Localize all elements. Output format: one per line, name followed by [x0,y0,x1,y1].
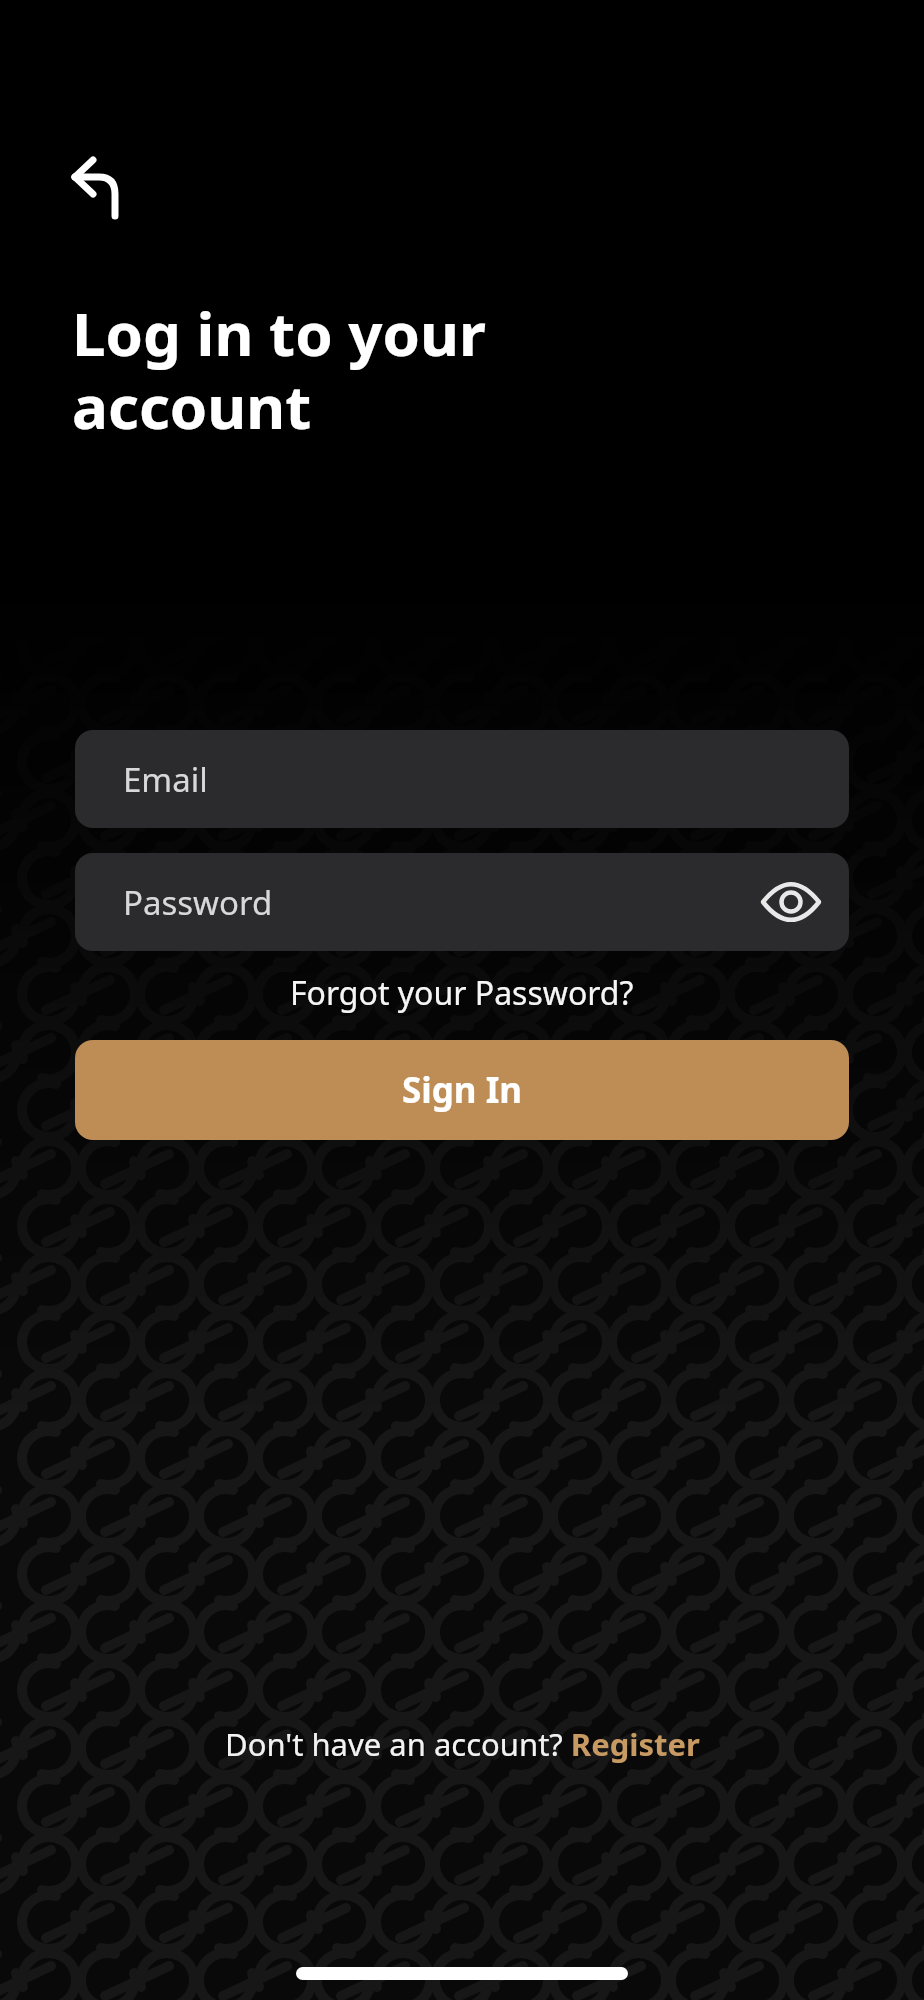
button[interactable]: Don't have an account? Register [225,1723,700,1765]
button[interactable]: Password [75,853,849,951]
staticText: Password [123,880,273,925]
staticText: Sign In [402,1066,523,1114]
button[interactable]: Sign In [75,1040,849,1140]
staticText: Email [123,757,208,802]
button[interactable] [57,142,133,234]
button[interactable]: Email [75,730,849,828]
button[interactable]: Forgot your Password? [290,971,634,1015]
staticText: Log in to your account [72,292,486,447]
